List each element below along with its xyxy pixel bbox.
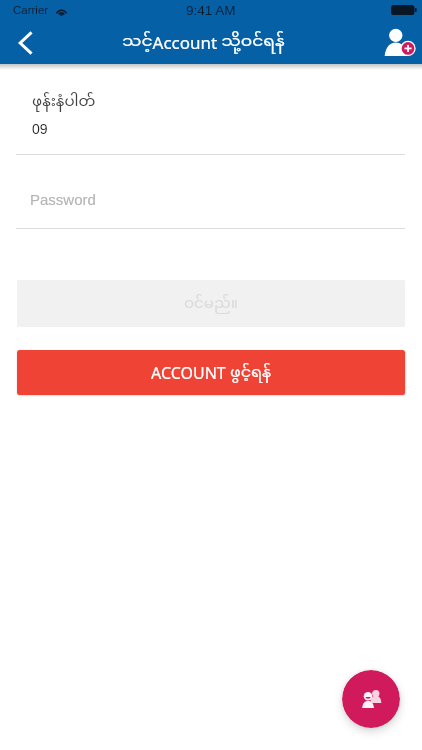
button[interactable]: ACCOUNT ဖွင့်ရန် [17, 350, 405, 395]
staticText: ဝင်မည်။ [184, 294, 238, 314]
staticText: 9:41 AM [186, 3, 236, 18]
staticText: ACCOUNT ဖွင့်ရန် [151, 362, 272, 384]
staticText: Password [30, 191, 96, 208]
staticText: သင့်Account သို့ဝင်ရန် [122, 31, 285, 54]
staticText: 09 [32, 121, 48, 137]
button[interactable]: Add account [376, 20, 422, 64]
staticText: Carrier [13, 4, 49, 17]
button[interactable]: Contacts [342, 670, 400, 728]
button[interactable]: Back [0, 20, 50, 64]
staticText: ဖုန်းနံပါတ် [32, 92, 96, 112]
